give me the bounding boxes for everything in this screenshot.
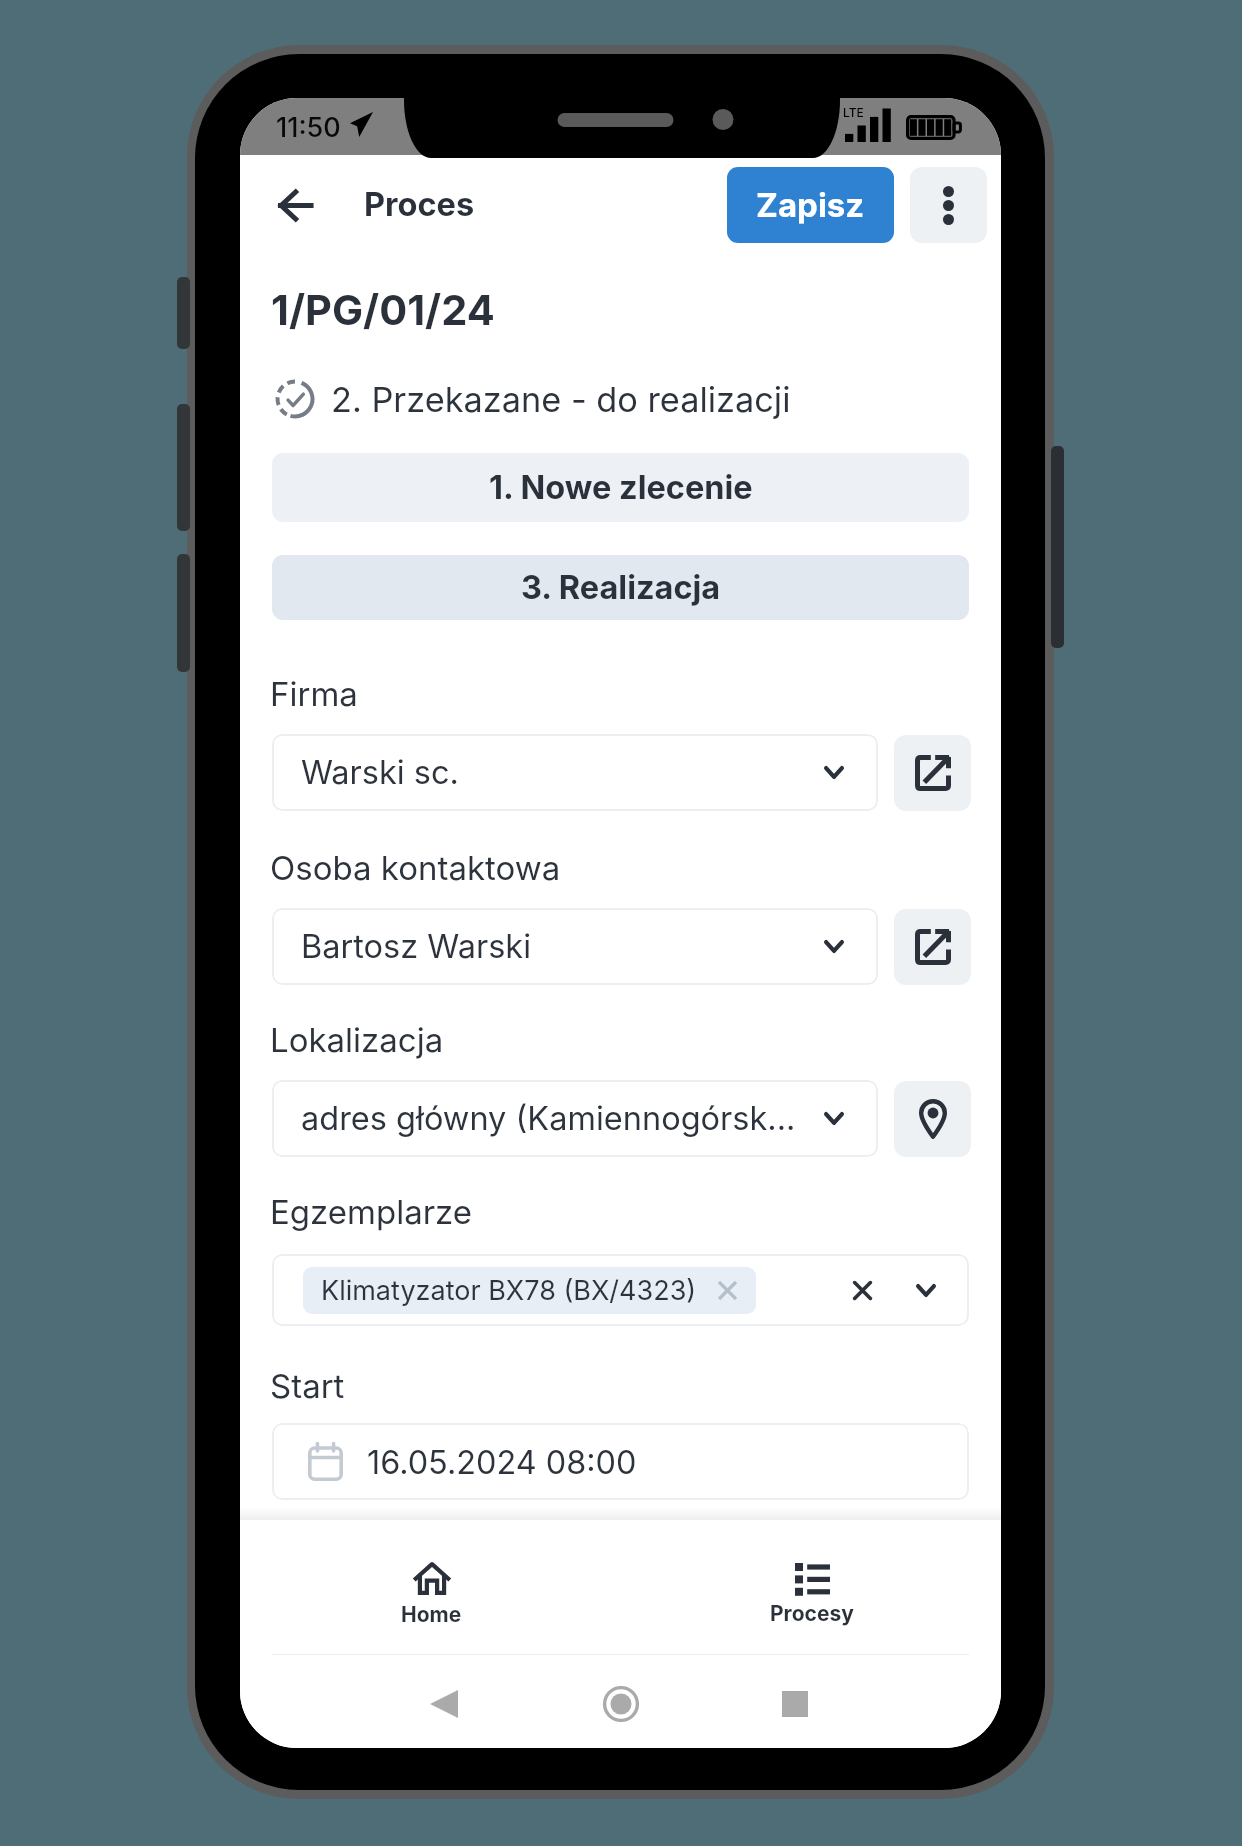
staticText: Proces — [364, 185, 475, 224]
button[interactable]: Back — [279, 190, 311, 221]
button[interactable]: Open details — [894, 909, 971, 985]
button[interactable]: Warski sc. — [272, 734, 878, 811]
button[interactable]: More options — [910, 167, 987, 243]
button[interactable]: Procesy — [727, 1562, 897, 1644]
staticText: Zapisz — [756, 185, 865, 225]
button[interactable]: Status: Przekazane — [274, 378, 316, 420]
button[interactable]: Show on map — [894, 1081, 971, 1157]
staticText: Procesy — [770, 1601, 854, 1626]
staticText: 1/PG/01/24 — [271, 285, 495, 335]
staticText: Klimatyzator BX78 (BX/4323) — [321, 1274, 697, 1307]
staticText: 11:50 — [276, 111, 341, 144]
button[interactable]: Bartosz Warski — [272, 908, 878, 985]
button[interactable]: Expand — [902, 1254, 950, 1326]
staticText: 16.05.2024 08:00 — [367, 1443, 637, 1482]
staticText: Firma — [270, 674, 358, 714]
button[interactable]: Zapisz — [727, 167, 894, 243]
staticText: 1. Nowe zlecenie — [489, 468, 753, 507]
staticText: Warski sc. — [301, 753, 459, 792]
staticText: LTE — [843, 105, 864, 120]
button[interactable]: Klimatyzator BX78 (BX/4323) — [272, 1254, 969, 1326]
staticText: adres główny (Kamiennogórsk... — [301, 1099, 796, 1138]
button[interactable]: Clear — [838, 1254, 886, 1326]
staticText: Home — [401, 1602, 462, 1627]
button[interactable]: 3. Realizacja — [272, 555, 969, 620]
button[interactable]: 16.05.2024 08:00 — [272, 1423, 969, 1500]
button[interactable]: adres główny (Kamiennogórsk... — [272, 1080, 878, 1157]
button[interactable]: Recent apps — [765, 1674, 825, 1734]
staticText: 2. Przekazane - do realizacji — [331, 379, 791, 421]
staticText: Lokalizacja — [270, 1020, 444, 1060]
staticText: Bartosz Warski — [301, 927, 532, 966]
button[interactable]: Home — [591, 1674, 651, 1734]
button[interactable]: Back — [414, 1674, 474, 1734]
staticText: Egzemplarze — [270, 1192, 473, 1232]
button[interactable]: Klimatyzator BX78 (BX/4323) — [303, 1267, 756, 1314]
button[interactable]: Home — [346, 1562, 516, 1644]
button[interactable]: 1. Nowe zlecenie — [272, 453, 969, 522]
staticText: 3. Realizacja — [521, 568, 721, 607]
staticText: Osoba kontaktowa — [270, 848, 561, 888]
button[interactable]: Open details — [894, 735, 971, 811]
staticText: Start — [270, 1366, 345, 1406]
